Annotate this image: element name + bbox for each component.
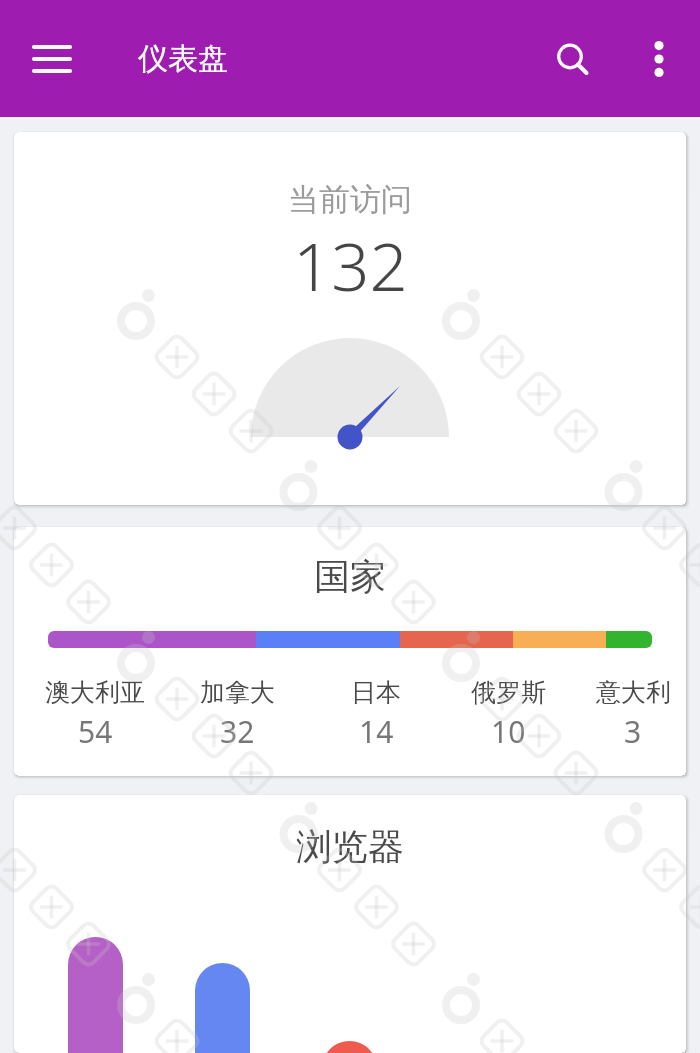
- staticText: 32: [220, 711, 255, 752]
- staticText: 日本: [351, 677, 401, 708]
- staticText: 浏览器: [296, 824, 404, 869]
- staticText: 澳大利亚: [45, 677, 145, 708]
- button[interactable]: [544, 31, 600, 87]
- staticText: 3: [624, 711, 642, 752]
- staticText: 俄罗斯: [471, 677, 546, 708]
- staticText: 当前访问: [288, 180, 412, 219]
- button[interactable]: [636, 36, 682, 82]
- staticText: 仪表盘: [138, 40, 228, 78]
- staticText: 10: [491, 711, 526, 752]
- staticText: 意大利: [596, 677, 671, 708]
- staticText: 14: [359, 711, 394, 752]
- staticText: 加拿大: [200, 677, 275, 708]
- button[interactable]: [22, 29, 82, 89]
- staticText: 132: [293, 219, 408, 310]
- staticText: 54: [78, 711, 113, 752]
- staticText: 国家: [314, 554, 386, 599]
